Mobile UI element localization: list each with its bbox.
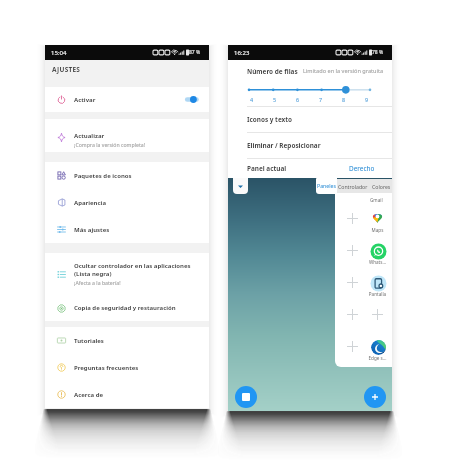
staticText: Ocultar controlador en las aplicaciones … xyxy=(74,262,191,278)
staticText: 5 xyxy=(273,96,277,103)
button[interactable]: Copia de seguridad y restauración xyxy=(45,295,209,321)
button[interactable]: Iconos y texto xyxy=(228,107,392,132)
staticText: 7 xyxy=(319,96,323,103)
button[interactable]: Apariencia xyxy=(45,189,209,216)
button[interactable]: Preguntas frecuentes xyxy=(45,354,209,381)
staticText: ¡Afecta a la batería! xyxy=(74,279,121,286)
staticText: Whats... xyxy=(365,259,390,265)
button[interactable]: Añadir aplicación xyxy=(335,302,392,334)
staticText: ¡Compra la versión completa! xyxy=(74,141,146,148)
button[interactable]: Edge s... xyxy=(335,334,392,366)
button[interactable]: Añadir panel xyxy=(364,386,386,408)
staticText: 8 xyxy=(342,96,346,103)
button[interactable]: Paquetes de iconos xyxy=(45,162,209,189)
button[interactable]: Panel actual xyxy=(228,159,392,178)
staticText: Iconos y texto xyxy=(247,115,293,124)
staticText: 6 xyxy=(296,96,300,103)
staticText: Derecho xyxy=(349,164,375,173)
button[interactable]: Más ajustes xyxy=(45,216,209,243)
staticText: 78 % xyxy=(372,49,384,56)
button[interactable]: Colores xyxy=(370,179,392,193)
button[interactable]: Paneles xyxy=(316,178,337,194)
staticText: Gmail xyxy=(370,197,383,203)
staticText: 15:04 xyxy=(51,49,67,57)
button[interactable]: Número de filas xyxy=(228,60,392,82)
staticText: 9 xyxy=(365,96,369,103)
staticText: Actualizar xyxy=(74,132,105,140)
button[interactable]: Detener xyxy=(235,386,257,408)
button[interactable]: Maps xyxy=(335,206,392,238)
staticText: Tutoriales xyxy=(74,337,104,345)
staticText: Controlador xyxy=(338,183,368,190)
staticText: 4 xyxy=(250,96,254,103)
button[interactable]: Expandir panel xyxy=(233,178,248,194)
staticText: Maps xyxy=(365,227,390,233)
staticText: Paneles xyxy=(317,182,336,189)
staticText: Limitado en la versión gratuita xyxy=(303,67,384,75)
button[interactable]: Actualizar xyxy=(45,119,209,152)
button[interactable]: Acerca de xyxy=(45,381,209,408)
button[interactable]: Whats... xyxy=(335,238,392,270)
staticText: Edge s... xyxy=(365,355,390,361)
staticText: Pantalla xyxy=(365,291,390,297)
staticText: Apariencia xyxy=(74,199,106,207)
button[interactable]: Activar xyxy=(45,87,209,112)
button[interactable]: Controlador xyxy=(336,179,370,193)
staticText: Activar xyxy=(74,96,96,104)
staticText: AJUSTES xyxy=(52,65,81,74)
staticText: Panel actual xyxy=(247,164,287,173)
staticText: Eliminar / Reposicionar xyxy=(247,141,321,150)
staticText: Colores xyxy=(372,183,391,190)
button[interactable]: Activar xyxy=(186,94,201,105)
staticText: 87 % xyxy=(189,49,201,56)
button[interactable]: Número de filas xyxy=(228,82,392,96)
staticText: Acerca de xyxy=(74,391,104,399)
staticText: 16:23 xyxy=(234,49,250,57)
staticText: Número de filas xyxy=(247,67,298,76)
staticText: Copia de seguridad y restauración xyxy=(74,304,176,312)
staticText: Preguntas frecuentes xyxy=(74,364,139,372)
staticText: Paquetes de iconos xyxy=(74,172,132,180)
staticText: Más ajustes xyxy=(74,226,110,234)
button[interactable]: Pantalla xyxy=(335,270,392,302)
button[interactable]: Ocultar controlador en las aplicaciones … xyxy=(45,253,209,295)
button[interactable]: Tutoriales xyxy=(45,327,209,354)
button[interactable]: Eliminar / Reposicionar xyxy=(228,133,392,158)
